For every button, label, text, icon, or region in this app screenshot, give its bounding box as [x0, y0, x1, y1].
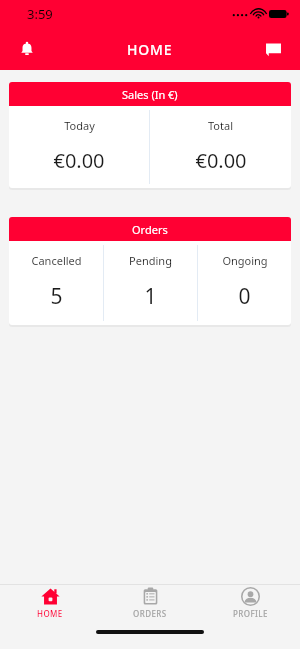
- staticText: HOME: [37, 608, 63, 619]
- button[interactable]: Sales (In €): [9, 82, 291, 188]
- staticText: Today: [64, 118, 95, 133]
- staticText: 5: [50, 282, 63, 311]
- staticText: HOME: [127, 40, 173, 59]
- staticText: 1: [144, 282, 157, 311]
- button[interactable]: HOME: [0, 585, 100, 620]
- button[interactable]: Notifications: [8, 30, 46, 68]
- staticText: PROFILE: [233, 608, 268, 619]
- button[interactable]: ORDERS: [100, 585, 200, 620]
- staticText: Pending: [129, 253, 172, 268]
- staticText: ORDERS: [133, 608, 167, 619]
- staticText: Orders: [132, 222, 168, 237]
- staticText: Sales (In €): [122, 87, 178, 102]
- staticText: 3:59: [27, 5, 53, 23]
- staticText: 0: [238, 282, 251, 311]
- staticText: Ongoing: [222, 253, 268, 268]
- button[interactable]: Messages: [254, 30, 292, 68]
- staticText: €0.00: [195, 147, 247, 174]
- button[interactable]: Orders: [9, 217, 291, 325]
- staticText: Total: [208, 118, 233, 133]
- button[interactable]: PROFILE: [200, 585, 300, 620]
- staticText: Cancelled: [31, 253, 82, 268]
- staticText: €0.00: [53, 147, 105, 174]
